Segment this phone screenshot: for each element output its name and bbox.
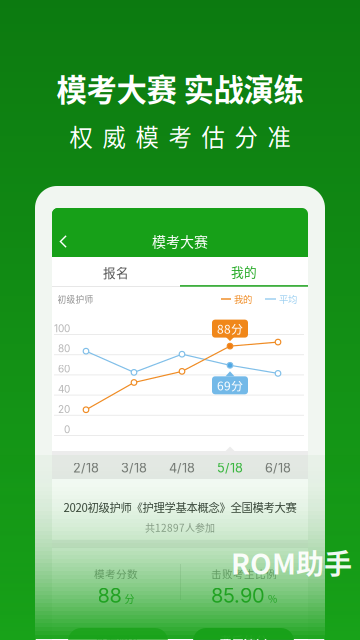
staticText: 85.90 [211, 583, 265, 608]
button[interactable]: 2/18 [62, 454, 110, 482]
button[interactable]: 考后估分 [193, 628, 294, 640]
button[interactable]: 5/18 [206, 454, 254, 482]
staticText: 分 [124, 591, 134, 606]
staticText: 查看解析 [94, 632, 142, 640]
staticText: 平均 [279, 292, 297, 306]
staticText: 模考分数 [94, 566, 138, 581]
staticText: 40 [58, 383, 70, 395]
staticText: 击败考生比例 [211, 566, 277, 581]
staticText: 初级护师 [57, 293, 93, 305]
staticText: 88分 [217, 320, 243, 337]
staticText: ROM助手 [231, 542, 352, 582]
staticText: 报名 [103, 263, 129, 281]
staticText: 5/18 [217, 460, 243, 476]
staticText: 2020初级护师《护理学基本概念》全国模考大赛 [63, 499, 296, 515]
staticText: 6/18 [265, 460, 291, 476]
staticText: 4/18 [169, 460, 195, 476]
staticText: 3/18 [121, 460, 147, 476]
button[interactable]: 4/18 [158, 454, 206, 482]
staticText: 20 [58, 403, 70, 415]
button[interactable]: 报名 [52, 257, 180, 286]
staticText: 2/18 [73, 460, 99, 476]
staticText: 88 [97, 583, 121, 608]
staticText: 100 [54, 322, 70, 335]
staticText: 模考大赛 实战演练 [56, 66, 303, 110]
button[interactable]: 查看解析 [68, 628, 168, 640]
button[interactable]: 返回 [52, 208, 82, 257]
button[interactable]: 我的 [180, 257, 308, 287]
staticText: 69分 [217, 377, 243, 394]
staticText: 权 威 模 考 估 分 准 [69, 119, 290, 153]
staticText: 共12897人参加 [145, 520, 215, 535]
staticText: 0 [64, 423, 70, 436]
staticText: 我的 [231, 262, 257, 281]
staticText: 80 [58, 343, 70, 355]
staticText: 考后估分 [219, 632, 267, 640]
button[interactable]: 6/18 [254, 454, 302, 482]
staticText: % [268, 591, 277, 606]
staticText: 60 [58, 363, 70, 375]
staticText: 模考大赛 [152, 231, 208, 251]
button[interactable]: 3/18 [110, 454, 158, 482]
staticText: 我的 [234, 292, 252, 306]
